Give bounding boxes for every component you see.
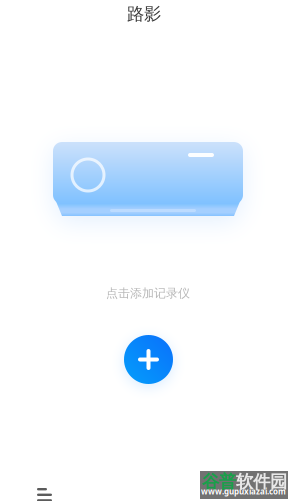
staticText: 路影 bbox=[127, 3, 161, 25]
staticText: www.gupuxiazai.com bbox=[201, 486, 286, 497]
button[interactable]: 菜单 bbox=[37, 488, 61, 501]
staticText: 谷普 bbox=[202, 471, 236, 492]
button[interactable]: 添加记录仪 bbox=[124, 335, 173, 384]
staticText: 软件园 bbox=[236, 471, 287, 492]
staticText: 点击添加记录仪 bbox=[106, 286, 190, 301]
